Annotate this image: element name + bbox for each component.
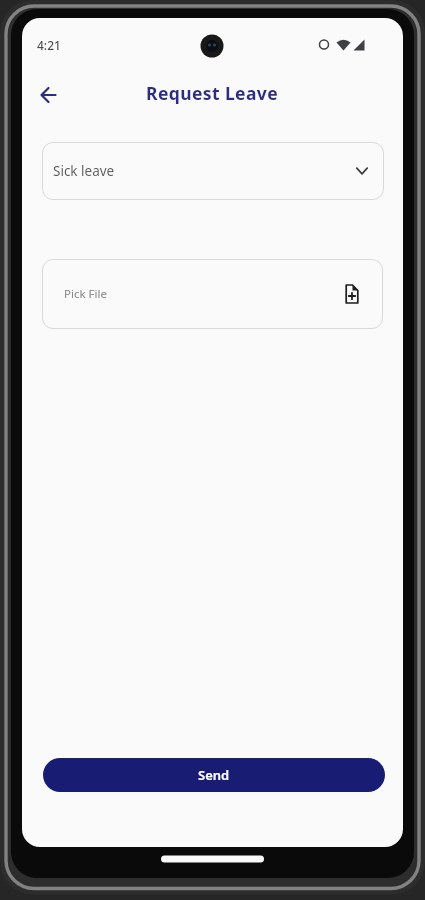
- button[interactable]: Sick leave: [42, 142, 384, 200]
- staticText: 4:21: [37, 37, 61, 53]
- staticText: Pick File: [64, 286, 107, 302]
- staticText: Sick leave: [53, 162, 115, 180]
- staticText: Request Leave: [146, 81, 279, 105]
- button[interactable]: [34, 81, 62, 109]
- button[interactable]: Pick File: [42, 259, 383, 329]
- button[interactable]: Send: [43, 758, 385, 792]
- staticText: Send: [198, 766, 230, 784]
